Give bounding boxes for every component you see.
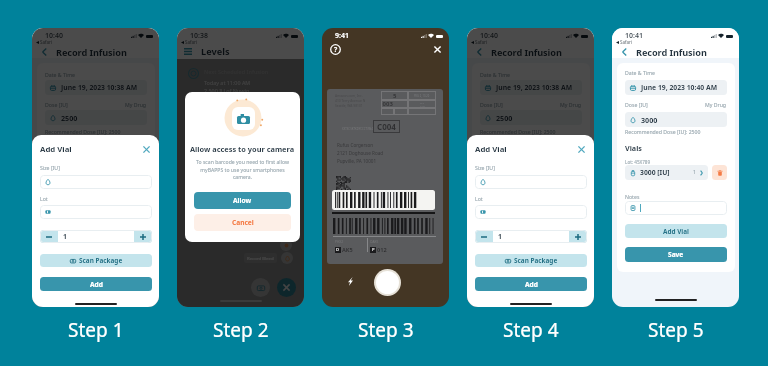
staticText: Size [IU]: [40, 164, 60, 171]
button[interactable]: Add: [40, 277, 152, 291]
button[interactable]: 2500: [485, 110, 577, 125]
staticText: Record Bleed: [247, 255, 274, 261]
staticText: 1: [693, 169, 696, 176]
staticText: Add Vial: [475, 144, 507, 155]
staticText: Pupville, PA 10001: [337, 158, 377, 164]
staticText: Size [IU]: [475, 164, 495, 171]
staticText: ?: [334, 45, 338, 54]
button[interactable]: Take photo: [374, 269, 401, 296]
staticText: 3000 [IU]: [640, 168, 670, 177]
staticText: Step 2: [213, 317, 269, 343]
staticText: Scan Package: [514, 256, 558, 265]
button[interactable]: Cancel: [194, 214, 291, 231]
staticText: 2PC: [420, 101, 425, 104]
staticText: Recommended Dose [IU]: 2500: [625, 128, 701, 135]
button[interactable]: June 19, 2023 10:40 AM: [630, 80, 722, 95]
staticText: XXTSCSKTKDYCCCT3W4: [342, 127, 373, 131]
button[interactable]: [480, 175, 582, 189]
staticText: Rufus Corgerson: [337, 142, 374, 148]
button[interactable]: [480, 205, 582, 219]
button[interactable]: 2500: [50, 110, 142, 125]
staticText: 10:40: [45, 31, 63, 41]
staticText: 5: [393, 92, 397, 100]
button[interactable]: Scan Package: [475, 254, 587, 267]
staticText: Dose [IU]: [45, 101, 68, 108]
staticText: Step 5: [648, 317, 704, 343]
button[interactable]: Close scanner: [432, 44, 442, 54]
staticText: Cancel: [232, 218, 254, 227]
button[interactable]: Close: [576, 144, 587, 155]
staticText: Recommended Dose [IU]: 2500: [45, 128, 121, 135]
button[interactable]: Close: [141, 144, 152, 155]
button[interactable]: Decrease: [475, 230, 493, 243]
staticText: Step 4: [503, 317, 559, 343]
staticText: Date & Time: [480, 71, 510, 78]
staticText: 003: [381, 100, 393, 108]
button[interactable]: Back: [472, 46, 486, 58]
staticText: Add: [90, 280, 103, 289]
staticText: OAK5: [370, 240, 379, 244]
staticText: 1: [63, 232, 67, 241]
staticText: Add Vial: [663, 227, 689, 236]
staticText: Lot: [475, 195, 483, 202]
button[interactable]: Add: [475, 277, 587, 291]
button[interactable]: Back: [37, 46, 51, 58]
button[interactable]: Scan package: [251, 278, 270, 297]
button[interactable]: [630, 201, 722, 215]
staticText: 10:41: [625, 31, 643, 41]
button[interactable]: 3000: [630, 112, 722, 127]
button[interactable]: Add Vial: [625, 224, 727, 238]
staticText: Add: [525, 280, 538, 289]
staticText: P: [372, 247, 375, 253]
staticText: June 19, 2023 10:38 AM: [61, 83, 138, 92]
button[interactable]: June 19, 2023 10:38 AM: [485, 80, 577, 95]
staticText: 012: [377, 246, 387, 254]
staticText: 2 500 IU of Nuwiq: [204, 87, 250, 94]
staticText: 2500: [61, 113, 78, 123]
staticText: PKG 2, 10-20: [414, 94, 430, 98]
staticText: D: [336, 247, 340, 253]
staticText: 4-05: [420, 104, 425, 107]
button[interactable]: Record Bleed: [281, 252, 293, 264]
staticText: Recommended Dose [IU]: 2500: [480, 128, 556, 135]
staticText: Date & Time: [45, 71, 75, 78]
button[interactable]: 3000 [IU]: [630, 165, 703, 180]
staticText: C004: [377, 121, 396, 132]
button[interactable]: Close menu: [277, 278, 296, 297]
button[interactable]: Increase: [569, 230, 587, 243]
staticText: 2121 Doghouse Road: [337, 150, 384, 156]
staticText: Vials: [625, 143, 642, 153]
staticText: June 19, 2023 10:38 AM: [496, 83, 573, 92]
staticText: Date & Time: [625, 69, 655, 76]
staticText: 3000: [641, 115, 658, 125]
button[interactable]: Back: [617, 46, 631, 58]
staticText: My Drug: [125, 101, 147, 108]
button[interactable]: Record Infusion: [280, 239, 292, 251]
staticText: Seattle, WA 98101: [335, 103, 363, 107]
button[interactable]: Scan Package: [40, 254, 152, 267]
staticText: Step 3: [358, 317, 414, 343]
staticText: Step 1: [68, 317, 124, 343]
staticText: Dose [IU]: [625, 101, 648, 108]
button[interactable]: Delete vial: [712, 165, 727, 180]
staticText: 9:41: [335, 31, 349, 41]
staticText: Amazon.com, Inc.: [335, 93, 363, 97]
button[interactable]: Decrease: [40, 230, 58, 243]
button[interactable]: [45, 175, 147, 189]
staticText: To scan barcode you need to first allow …: [196, 159, 289, 180]
button[interactable]: June 19, 2023 10:38 AM: [50, 80, 142, 95]
button[interactable]: [45, 205, 147, 219]
button[interactable]: Increase: [134, 230, 152, 243]
button[interactable]: Allow: [194, 192, 291, 209]
staticText: My Drug: [560, 101, 582, 108]
button[interactable]: Menu: [183, 48, 192, 55]
staticText: PHX2: [335, 240, 343, 244]
button[interactable]: Help: [330, 44, 341, 55]
staticText: Safari: [475, 39, 488, 45]
staticText: 10:38: [190, 31, 208, 41]
staticText: June 19, 2023 10:40 AM: [641, 83, 718, 92]
button[interactable]: Save: [625, 247, 727, 262]
staticText: Levels: [201, 45, 230, 58]
button[interactable]: Flash: [345, 276, 356, 287]
